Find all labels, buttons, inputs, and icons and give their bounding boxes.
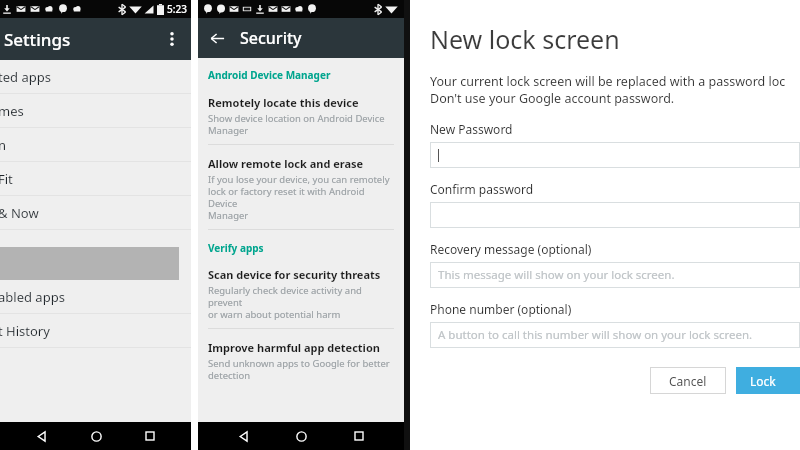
button[interactable]: Fit (0, 162, 191, 196)
staticText: Settings (4, 28, 71, 51)
button[interactable]: Lock (736, 367, 800, 394)
button[interactable]: More options (161, 28, 183, 50)
staticText: t History (0, 322, 50, 340)
staticText: Your current lock screen will be replace… (430, 73, 786, 107)
staticText: Phone number (optional) (430, 301, 572, 317)
staticText: ted apps (0, 68, 51, 86)
button[interactable]: Back (205, 26, 229, 50)
staticText: Cancel (669, 373, 707, 389)
button[interactable]: Remotely locate this device (208, 95, 394, 137)
staticText: A button to call this number will show o… (438, 327, 753, 343)
button[interactable]: Recent apps (346, 423, 372, 449)
staticText: Send unknown apps to Google for better d… (208, 357, 390, 382)
button[interactable]: Home (288, 423, 314, 449)
staticText: Show device location on Android Device M… (208, 112, 385, 137)
staticText: Remotely locate this device (208, 95, 359, 110)
staticText: Fit (0, 170, 13, 188)
staticText: mes (0, 102, 24, 120)
button[interactable]: This message will show on your lock scre… (430, 262, 800, 288)
staticText: Recovery message (optional) (430, 241, 592, 257)
staticText: New Password (430, 121, 513, 137)
button[interactable]: Recent apps (137, 423, 163, 449)
staticText: This message will show on your lock scre… (438, 267, 675, 283)
staticText: n (0, 136, 7, 154)
button[interactable]: ted apps (0, 60, 191, 94)
button[interactable]: mes (0, 94, 191, 128)
button[interactable]: n (0, 128, 191, 162)
staticText: 5:23 (167, 2, 187, 16)
button[interactable]: Scan device for security threats (208, 267, 394, 321)
staticText: Regularly check device activity and prev… (208, 284, 394, 321)
staticText: Verify apps (208, 241, 264, 255)
button[interactable]: abled apps (0, 280, 191, 314)
button[interactable]: Cancel (650, 367, 726, 394)
staticText: Allow remote lock and erase (208, 156, 364, 171)
button[interactable] (430, 142, 800, 168)
button[interactable]: Improve harmful app detection (208, 340, 394, 382)
button[interactable]: Settings (0, 18, 191, 60)
staticText: New lock screen (430, 22, 620, 56)
staticText: If you lose your device, you can remotel… (208, 173, 394, 222)
button[interactable]: Home (83, 423, 109, 449)
staticText: abled apps (0, 288, 65, 306)
staticText: Lock (750, 373, 776, 389)
staticText: Android Device Manager (208, 68, 331, 82)
button[interactable]: Back (230, 423, 256, 449)
button[interactable]: & Now (0, 196, 191, 230)
button[interactable]: Back (28, 423, 54, 449)
button[interactable] (430, 202, 800, 228)
staticText: Confirm password (430, 181, 534, 197)
button[interactable]: A button to call this number will show o… (430, 322, 800, 348)
staticText: & Now (0, 204, 39, 222)
button[interactable]: Allow remote lock and erase (208, 156, 394, 222)
button[interactable]: t History (0, 314, 191, 348)
staticText: Improve harmful app detection (208, 340, 380, 355)
staticText: Security (240, 27, 302, 49)
staticText: Scan device for security threats (208, 267, 381, 282)
